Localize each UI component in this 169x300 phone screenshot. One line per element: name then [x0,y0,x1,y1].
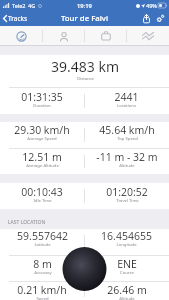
staticText: Travel Time [116,198,139,204]
button[interactable]: ENE [117,256,137,276]
staticText: Altitude [119,296,135,300]
button[interactable]: Tracks [0,12,32,25]
staticText: 49% [146,2,157,9]
button[interactable]: Share [140,11,153,26]
staticText: Duration [33,103,51,109]
staticText: Altitude [119,163,135,169]
button[interactable]: Trips [85,26,127,46]
staticText: 16.454655 [101,229,152,243]
button[interactable]: Profile [43,26,85,46]
staticText: 01:20:52 [106,185,148,199]
button[interactable]: 12.51 m [22,149,62,169]
button[interactable]: 01:31:35 [21,88,63,109]
staticText: Tour de Falvi [61,13,109,24]
button[interactable]: 29.30 km/h [14,122,70,142]
staticText: -11 m - 32 m [96,150,158,164]
button[interactable]: 00:10:43 [21,183,63,204]
button[interactable]: 01:20:52 [106,183,148,204]
button[interactable]: 39.483 km [51,55,119,82]
staticText: 29.30 km/h [14,123,70,137]
button[interactable]: 26.46 m [107,282,147,300]
staticText: ENE [117,257,137,271]
staticText: 12.51 m [22,150,62,164]
staticText: Course [120,270,134,276]
staticText: Distance [77,76,94,82]
button[interactable]: 45.64 km/h [99,122,155,142]
staticText: Average Altitude [26,163,59,169]
staticText: Latitude [34,242,51,248]
button[interactable]: Charts [127,26,169,46]
staticText: 8 m [33,257,52,271]
button[interactable]: Settings [153,11,168,26]
staticText: Longitude [116,242,137,248]
button[interactable]: -11 m - 32 m [96,149,158,169]
staticText: 00:10:43 [21,185,63,199]
staticText: Tele2 [12,2,26,9]
staticText: 4G [28,2,36,9]
button[interactable]: 2441 [114,88,139,109]
staticText: 59.557642 [17,229,68,243]
staticText: Tracks [8,14,28,23]
button[interactable]: 16.454655 [101,229,152,248]
staticText: 19:19 [77,2,92,10]
staticText: LAST LOCATION [8,219,46,226]
staticText: 2441 [114,90,139,104]
staticText: 01:31:35 [21,90,63,104]
staticText: 0.21 km/h [17,283,67,297]
staticText: 45.64 km/h [99,123,155,137]
button[interactable]: Summary [0,26,43,46]
staticText: 26.46 m [107,283,147,297]
button[interactable]: 0.21 km/h [17,282,67,300]
staticText: Idle Time [33,198,52,204]
staticText: Average Speed [27,136,57,142]
staticText: Locations [117,103,136,109]
staticText: Top Speed [117,136,138,142]
button[interactable]: 59.557642 [17,229,68,248]
staticText: Speed [36,296,49,300]
staticText: Accuracy [34,270,52,276]
staticText: 39.483 km [51,57,119,76]
button[interactable]: 8 m [33,256,52,276]
